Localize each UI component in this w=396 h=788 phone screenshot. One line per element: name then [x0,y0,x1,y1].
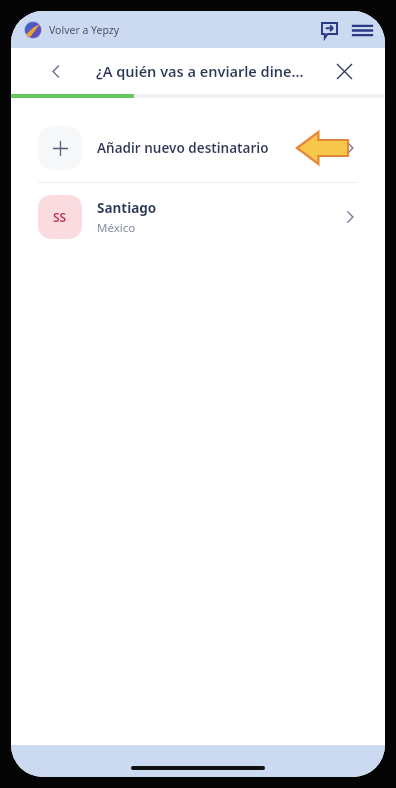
button[interactable]: Menú [349,17,375,43]
button[interactable]: Cerrar [329,56,359,86]
staticText: ¿A quién vas a enviarle dine… [96,61,304,81]
staticText: Añadir nuevo destinatario [97,139,269,157]
button[interactable]: Enviar comentarios [316,17,342,43]
staticText: SS [53,209,67,225]
button[interactable]: SS [11,183,385,251]
staticText: Volver a Yepzy [49,23,120,37]
button[interactable]: Añadir nuevo destinatario [11,114,385,182]
staticText: México [97,220,136,236]
button[interactable]: Volver a Yepzy [21,18,123,42]
staticText: Santiago [97,199,157,217]
button[interactable]: Atrás [41,56,71,86]
